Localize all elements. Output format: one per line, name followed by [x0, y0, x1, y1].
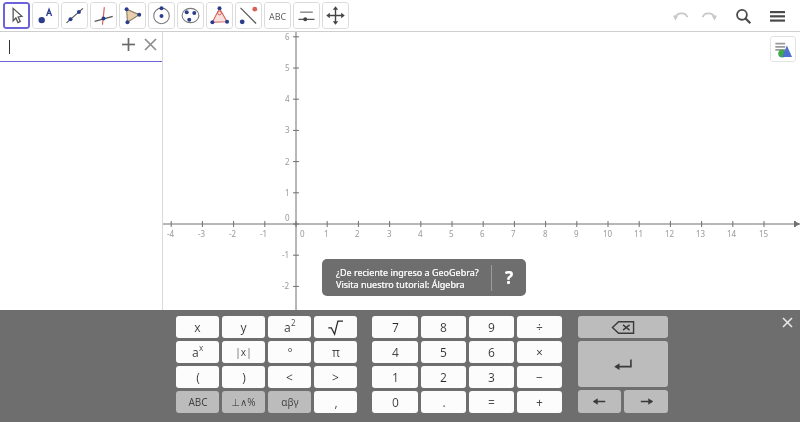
staticText: 14	[727, 228, 737, 239]
button[interactable]: 4	[372, 341, 418, 363]
staticText: π	[332, 344, 340, 360]
button[interactable]: =	[469, 391, 514, 413]
button[interactable]: ¿De reciente ingreso a GeoGebra?	[322, 259, 526, 296]
staticText: 10	[603, 228, 613, 239]
button[interactable]: a	[268, 316, 311, 338]
button[interactable]: 5	[421, 341, 466, 363]
staticText: 3	[285, 124, 290, 135]
staticText: 1	[392, 369, 399, 385]
staticText: x	[199, 342, 204, 353]
button[interactable]: (	[176, 366, 219, 388]
button[interactable]: 7	[372, 316, 418, 338]
button[interactable]: <	[268, 366, 311, 388]
staticText: 11	[634, 228, 644, 239]
staticText: y	[240, 319, 247, 335]
staticText: <	[286, 369, 293, 385]
staticText: 2	[285, 156, 290, 167]
staticText: 6	[285, 31, 290, 42]
staticText: -2	[229, 228, 237, 239]
staticText: 4	[392, 344, 399, 360]
staticText: 8	[440, 319, 447, 335]
button[interactable]: Style bar	[770, 36, 796, 62]
staticText: −	[536, 369, 543, 385]
button[interactable]: 8	[421, 316, 466, 338]
button[interactable]: Reflect	[235, 2, 262, 29]
button[interactable]: −	[517, 366, 562, 388]
button[interactable]: )	[222, 366, 265, 388]
button[interactable]: Text	[264, 2, 291, 29]
staticText: 0	[300, 228, 305, 239]
staticText: )	[242, 369, 246, 385]
button[interactable]: Angle	[206, 2, 233, 29]
button[interactable]: Line	[61, 2, 88, 29]
button[interactable]: ÷	[517, 316, 562, 338]
staticText: 6	[480, 228, 485, 239]
button[interactable]: x	[176, 316, 219, 338]
button[interactable]: 9	[469, 316, 514, 338]
button[interactable]: .	[421, 391, 466, 413]
button[interactable]: |x|	[222, 341, 265, 363]
button[interactable]	[0, 32, 163, 61]
button[interactable]: Add row	[117, 33, 139, 55]
button[interactable]: Circle	[148, 2, 175, 29]
button[interactable]: Move	[3, 2, 30, 29]
staticText: 13	[696, 228, 706, 239]
button[interactable]: Close keyboard	[778, 313, 796, 331]
staticText: |x|	[235, 345, 252, 359]
staticText: 15	[759, 228, 769, 239]
staticText: ×	[536, 344, 543, 360]
button[interactable]: Close algebra view	[139, 33, 161, 55]
button[interactable]: Undo	[668, 3, 694, 29]
staticText: 5	[449, 228, 454, 239]
staticText: =	[488, 394, 495, 410]
button[interactable]: Help	[492, 259, 526, 296]
button[interactable]: ABC	[176, 391, 219, 413]
button[interactable]: Redo	[696, 3, 722, 29]
button[interactable]: Perpendicular line	[90, 2, 117, 29]
button[interactable]: Backspace	[578, 316, 668, 338]
staticText: ?	[505, 266, 514, 289]
button[interactable]: 2	[421, 366, 466, 388]
button[interactable]: +	[517, 391, 562, 413]
button[interactable]: Slider	[293, 2, 320, 29]
staticText: 7	[392, 319, 399, 335]
button[interactable]: Move left	[578, 390, 621, 413]
button[interactable]: π	[314, 341, 357, 363]
staticText: 9	[488, 319, 495, 335]
staticText: 8	[543, 228, 548, 239]
staticText: 7	[511, 228, 516, 239]
button[interactable]: ×	[517, 341, 562, 363]
button[interactable]: 0	[372, 391, 418, 413]
button[interactable]: Search	[730, 3, 756, 29]
staticText: -4	[167, 228, 175, 239]
staticText: a	[284, 319, 291, 335]
button[interactable]: °	[268, 341, 311, 363]
button[interactable]: y	[222, 316, 265, 338]
staticText: .	[442, 394, 446, 410]
button[interactable]: 1	[372, 366, 418, 388]
button[interactable]: Enter	[578, 341, 668, 387]
button[interactable]: Menu	[764, 3, 790, 29]
button[interactable]: a	[176, 341, 219, 363]
button[interactable]: 3	[469, 366, 514, 388]
button[interactable]: αβγ	[268, 391, 311, 413]
staticText: 0	[285, 212, 290, 223]
button[interactable]: >	[314, 366, 357, 388]
button[interactable]: Square root	[314, 316, 357, 338]
staticText: -3	[198, 228, 206, 239]
button[interactable]: Move right	[624, 390, 668, 413]
button[interactable]: 6	[469, 341, 514, 363]
staticText: 2	[440, 369, 447, 385]
button[interactable]: ⊥∧%	[222, 391, 265, 413]
staticText: 4	[418, 228, 423, 239]
button[interactable]: Polygon	[119, 2, 146, 29]
staticText: 0	[392, 394, 399, 410]
staticText: -2	[282, 280, 290, 291]
button[interactable]: Move graphics view	[322, 2, 349, 29]
button[interactable]: Point	[32, 2, 59, 29]
button[interactable]: Conic	[177, 2, 204, 29]
staticText: ÷	[536, 319, 543, 335]
button[interactable]: ,	[314, 391, 357, 413]
staticText: 1	[285, 187, 290, 198]
staticText: 5	[440, 344, 447, 360]
